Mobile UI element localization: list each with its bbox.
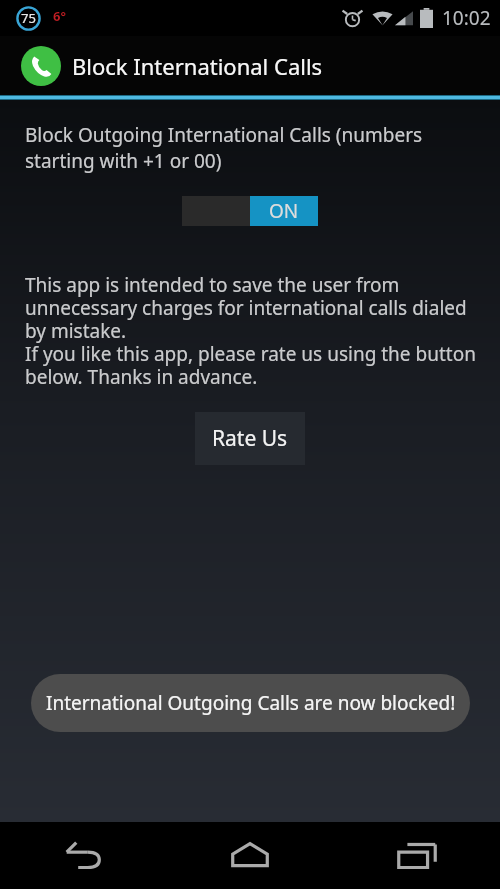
button[interactable]: Home — [166, 822, 333, 889]
button[interactable]: Recent apps — [333, 822, 500, 889]
button[interactable]: International Outgoing Calls are now blo… — [31, 674, 470, 732]
button[interactable]: Rate Us — [195, 412, 305, 465]
staticText: Block International Calls — [72, 51, 323, 81]
staticText: 10:02 — [442, 5, 491, 31]
staticText: 75 — [21, 9, 36, 27]
staticText: Block Outgoing International Calls (numb… — [25, 122, 480, 173]
staticText: ON — [269, 198, 299, 224]
staticText: Rate Us — [212, 424, 288, 453]
other: App icon — [21, 46, 61, 86]
button[interactable]: Back — [0, 822, 166, 889]
staticText: International Outgoing Calls are now blo… — [46, 690, 456, 716]
button[interactable]: ON — [182, 196, 318, 226]
staticText: 6° — [53, 7, 66, 25]
staticText: This app is intended to save the user fr… — [25, 272, 480, 390]
